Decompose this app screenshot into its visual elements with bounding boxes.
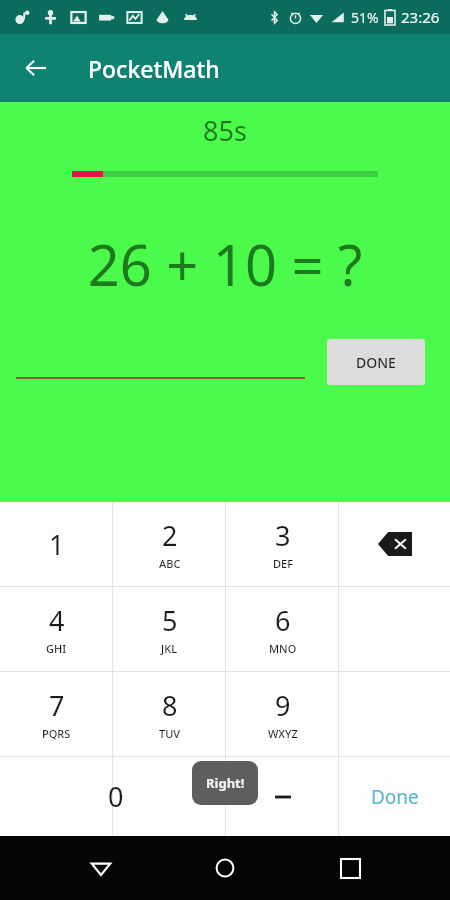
staticText: PocketMath	[88, 53, 220, 84]
staticText: TUV	[159, 726, 181, 741]
staticText: 1	[49, 526, 65, 563]
button[interactable]: 8	[113, 672, 226, 756]
button[interactable]: 4	[0, 587, 113, 671]
staticText: 9	[275, 687, 291, 724]
button[interactable]: Recents	[326, 844, 374, 892]
staticText: PQRS	[42, 726, 71, 741]
staticText: 26 + 10 = ?	[0, 226, 450, 302]
button[interactable]: Backspace	[339, 502, 450, 586]
staticText: ABC	[159, 556, 181, 571]
staticText: 2	[162, 517, 178, 554]
staticText: GHI	[46, 641, 67, 656]
staticText: DONE	[356, 353, 396, 372]
staticText: DEF	[273, 556, 293, 571]
button[interactable]: 9	[226, 672, 339, 756]
button[interactable]: Done	[339, 757, 450, 836]
staticText: 3	[275, 517, 291, 554]
button[interactable]: 1	[0, 502, 113, 586]
button[interactable]: 3	[226, 502, 339, 586]
staticText: 85s	[203, 112, 247, 149]
staticText: 6	[275, 602, 291, 639]
button[interactable]	[0, 757, 113, 836]
staticText: 0	[108, 778, 124, 815]
button[interactable]: Back	[14, 46, 58, 90]
staticText: WXYZ	[268, 726, 298, 741]
staticText: 23:26	[401, 7, 440, 27]
staticText: 7	[49, 687, 65, 724]
staticText: 51%	[351, 8, 379, 27]
button[interactable]: 0	[113, 757, 226, 836]
button[interactable]: 5	[113, 587, 226, 671]
staticText: 4	[49, 602, 65, 639]
staticText: Right!	[206, 774, 245, 792]
staticText: MNO	[269, 641, 297, 656]
button[interactable]: 7	[0, 672, 113, 756]
button[interactable]: 6	[226, 587, 339, 671]
button[interactable]: Home	[201, 844, 249, 892]
button[interactable]: 2	[113, 502, 226, 586]
staticText: 5	[162, 602, 178, 639]
button[interactable]: DONE	[327, 339, 425, 385]
staticText: JKL	[161, 641, 178, 656]
staticText: Done	[371, 784, 419, 810]
staticText: 8	[162, 687, 178, 724]
button[interactable]: Back	[77, 844, 125, 892]
button[interactable]: Minus	[226, 757, 339, 836]
